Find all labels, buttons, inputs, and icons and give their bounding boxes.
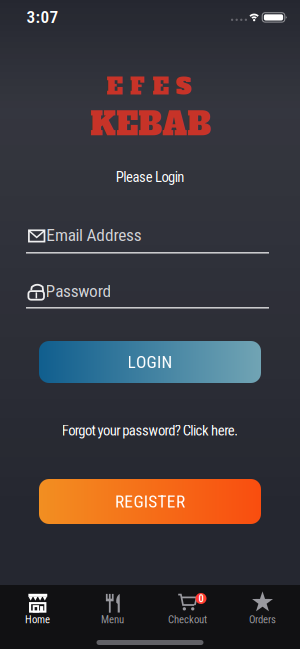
staticText: KEBAB [90, 103, 211, 145]
staticText: Checkout [168, 613, 207, 626]
staticText: Email Address [46, 225, 142, 245]
staticText: REGISTER [115, 491, 185, 512]
button[interactable]: Home [0, 585, 75, 633]
staticText: Password [45, 281, 111, 301]
button[interactable]: Orders [225, 585, 300, 633]
staticText: LOGIN [127, 352, 172, 372]
staticText: Please Login [116, 168, 184, 186]
staticText: 3:07 [26, 7, 58, 27]
staticText: E [152, 71, 168, 102]
button[interactable]: Menu [75, 585, 150, 633]
staticText: Menu [101, 613, 124, 626]
button[interactable]: Email Address [0, 224, 300, 256]
button[interactable]: LOGIN [39, 341, 261, 383]
button[interactable]: Forgot your password? Click here. [62, 422, 238, 439]
staticText: E [106, 71, 122, 102]
staticText: Home [25, 613, 50, 626]
button[interactable]: REGISTER [39, 479, 261, 524]
staticText: 0 [198, 592, 203, 605]
staticText: Forgot your password? Click here. [62, 422, 238, 439]
staticText: Orders [249, 613, 276, 626]
staticText: F [130, 71, 145, 102]
button[interactable]: Password [0, 279, 300, 311]
staticText: S [176, 71, 192, 102]
button[interactable]: Checkout [150, 585, 225, 633]
